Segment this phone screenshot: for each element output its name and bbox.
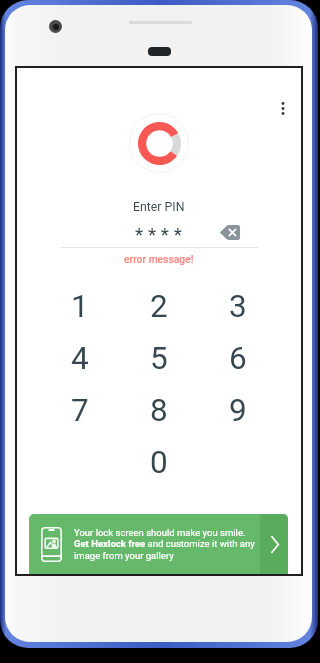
button[interactable]: 3 [198, 280, 277, 332]
button[interactable]: 5 [119, 332, 198, 384]
staticText: 2 [150, 288, 168, 325]
staticText: error message! [124, 253, 194, 265]
button[interactable]: 4 [40, 332, 119, 384]
button[interactable]: More options [269, 94, 297, 122]
button[interactable]: 9 [198, 384, 277, 436]
button[interactable]: 0 [119, 436, 198, 488]
button[interactable]: 1 [40, 280, 119, 332]
staticText: 4 [71, 340, 89, 377]
staticText: 1 [71, 288, 89, 325]
staticText: 6 [229, 340, 247, 377]
staticText: Your lock screen should make you smile. … [74, 527, 255, 562]
button[interactable]: 2 [119, 280, 198, 332]
staticText: 7 [71, 392, 89, 429]
staticText: 8 [150, 392, 168, 429]
button[interactable]: 6 [198, 332, 277, 384]
button[interactable]: Backspace [215, 221, 243, 244]
staticText: Enter PIN [133, 200, 185, 214]
staticText: 0 [150, 444, 168, 481]
staticText: 5 [150, 340, 168, 377]
staticText: 9 [229, 392, 247, 429]
button[interactable]: 8 [119, 384, 198, 436]
button[interactable]: Your lock screen should make you smile. … [29, 514, 288, 574]
staticText: 3 [229, 288, 247, 325]
button[interactable]: 7 [40, 384, 119, 436]
staticText: * * * * [135, 223, 182, 245]
